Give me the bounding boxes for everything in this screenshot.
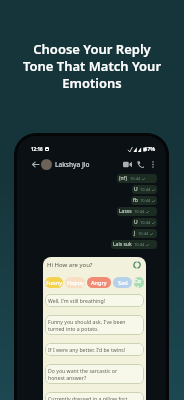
staticText: 12:16: [31, 146, 43, 152]
button[interactable]: Voice call: [134, 158, 147, 171]
button[interactable]: Cool: [134, 277, 144, 288]
staticText: (nf): [119, 175, 128, 182]
button[interactable]: Video call: [121, 158, 134, 171]
button[interactable]: If I were any better, I'd be twins!: [45, 343, 144, 356]
button[interactable]: Currently dressed in a pillow fort.: [45, 392, 144, 400]
staticText: Funny you should ask, I've been turned i…: [48, 318, 126, 332]
button[interactable]: Do you want the sarcastic or honest answ…: [45, 364, 144, 384]
staticText: Well, I'm still breathing!: [48, 297, 106, 304]
button[interactable]: Back: [30, 159, 40, 169]
button[interactable]: Well, I'm still breathing!: [45, 294, 144, 307]
button[interactable]: Refresh: [132, 260, 142, 270]
staticText: 10:44: [134, 209, 145, 214]
staticText: 10:44: [140, 220, 151, 225]
staticText: Cool: [134, 277, 144, 288]
staticText: 10:44: [130, 176, 141, 181]
staticText: 47%: [144, 145, 156, 152]
staticText: 10:44: [134, 242, 145, 247]
button[interactable]: More options: [147, 159, 158, 170]
staticText: Do you want the sarcastic or honest answ…: [48, 367, 118, 381]
staticText: U: [134, 219, 138, 226]
button[interactable]: Funny you should ask, I've been turned i…: [45, 315, 144, 335]
staticText: U: [134, 186, 138, 193]
staticText: Choose Your Reply Tone That Match Your E…: [21, 40, 163, 92]
staticText: Funny: [46, 279, 63, 286]
staticText: 10:44: [140, 198, 151, 203]
button[interactable]: Angry: [87, 277, 111, 288]
button[interactable]: Sad: [113, 277, 132, 288]
staticText: 10:44: [140, 187, 151, 192]
staticText: 10:44: [138, 231, 149, 236]
button[interactable]: Funny: [45, 277, 63, 288]
staticText: Hi How are you?: [47, 261, 93, 269]
staticText: Lasss: [119, 208, 132, 215]
staticText: Lais suk: [113, 241, 132, 248]
button[interactable]: Happy: [65, 277, 85, 288]
staticText: Lakshya Jio: [55, 160, 90, 169]
staticText: Currently dressed in a pillow fort.: [48, 395, 129, 400]
staticText: J: [134, 230, 136, 237]
staticText: fb: [133, 197, 138, 204]
staticText: Sad: [118, 279, 128, 286]
staticText: Happy: [67, 279, 84, 286]
staticText: Angry: [91, 279, 107, 286]
staticText: If I were any better, I'd be twins!: [48, 346, 126, 353]
